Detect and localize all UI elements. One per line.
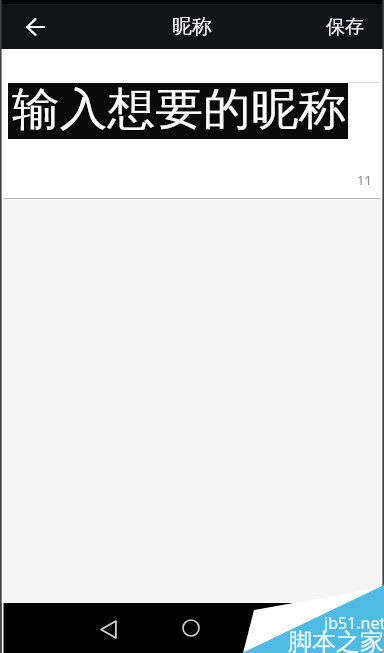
button[interactable]: Back — [84, 605, 132, 653]
button[interactable]: Home — [167, 604, 215, 652]
button[interactable]: Back — [13, 5, 57, 49]
staticText: 11 — [357, 171, 372, 189]
staticText: 昵称 — [172, 14, 212, 39]
button[interactable]: 输入想要的昵称 — [8, 83, 348, 139]
button[interactable]: 保存 — [310, 0, 384, 49]
staticText: jb51.net — [324, 612, 384, 634]
staticText: 保存 — [326, 15, 364, 39]
staticText: 输入想要的昵称 — [12, 82, 346, 137]
staticText: 脚本之家 — [288, 627, 384, 653]
